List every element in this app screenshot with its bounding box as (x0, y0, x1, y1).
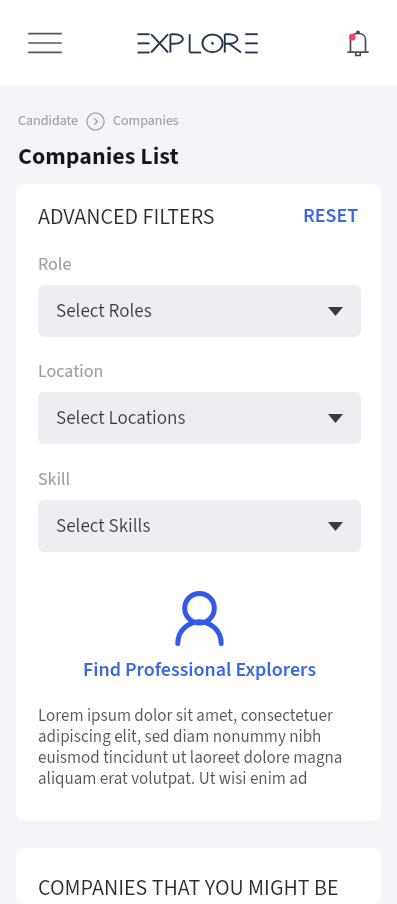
staticText: ADVANCED FILTERS (38, 201, 215, 232)
staticText: Lorem ipsum dolor sit amet, consectetuer… (38, 704, 361, 791)
staticText: Companies List (18, 139, 179, 173)
staticText: COMPANIES THAT YOU MIGHT BE INTERESTED I… (38, 872, 361, 904)
staticText: Location (38, 359, 104, 385)
button[interactable]: Select Roles (38, 285, 361, 337)
button[interactable]: Select Skills (38, 500, 361, 552)
staticText: Select Roles (56, 298, 328, 325)
button[interactable]: Notifications (337, 24, 375, 62)
button[interactable]: Open navigation menu (15, 18, 75, 68)
staticText: Select Locations (56, 405, 328, 432)
staticText: RESET (303, 202, 359, 230)
button[interactable]: RESET (301, 200, 361, 232)
button[interactable]: Find Professional Explorers (38, 656, 361, 684)
staticText: Find Professional Explorers (83, 656, 317, 684)
staticText: Companies (113, 111, 179, 131)
staticText: Select Skills (56, 513, 328, 540)
button[interactable]: Select Locations (38, 392, 361, 444)
staticText: Candidate (18, 111, 79, 131)
staticText: Role (38, 252, 72, 278)
staticText: Skill (38, 467, 71, 493)
